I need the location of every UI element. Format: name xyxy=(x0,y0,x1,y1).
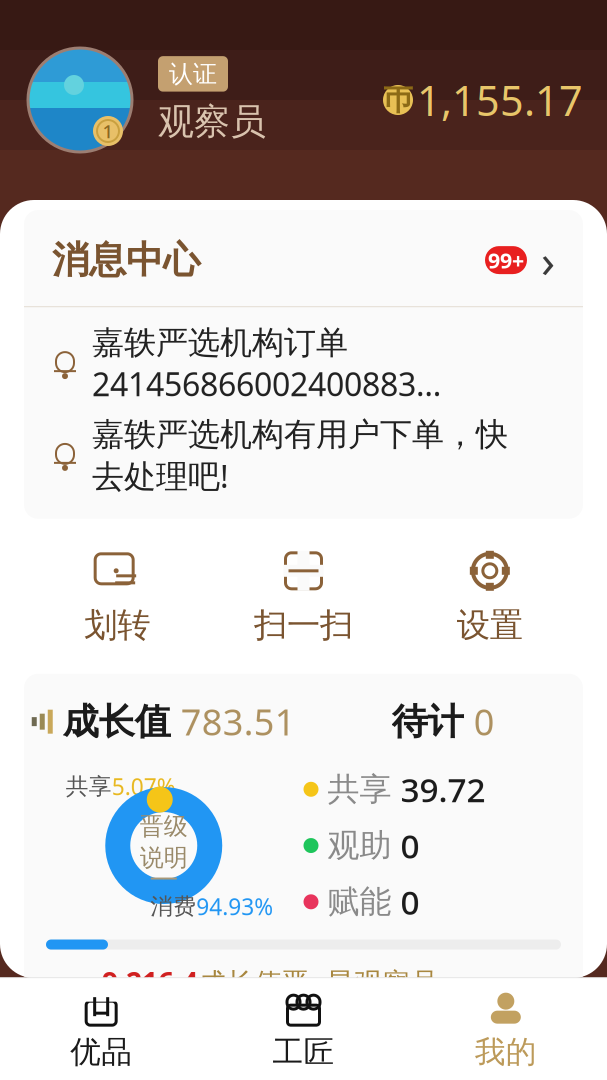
staticText: 划转 xyxy=(84,605,150,646)
button[interactable]: 嘉轶严选机构订单241456866002400883… xyxy=(24,307,583,405)
staticText: 0 xyxy=(400,823,419,868)
button[interactable]: 设置 xyxy=(397,543,583,652)
staticText: 晋级 xyxy=(140,812,188,841)
button[interactable]: 优品 xyxy=(0,990,202,1073)
staticText: 9,216.49 xyxy=(102,963,198,1038)
staticText: 认证 xyxy=(169,59,217,89)
staticText: 嘉轶严选机构订单241456866002400883… xyxy=(92,323,441,405)
staticText: › xyxy=(541,230,555,290)
staticText: 待计 xyxy=(392,699,464,744)
staticText: 5.07% xyxy=(112,771,176,802)
staticText: 成长值晋升为 xyxy=(198,966,310,1035)
staticText: 赋能 xyxy=(327,882,391,921)
staticText: 99+ xyxy=(488,246,524,274)
staticText: 观察员 xyxy=(158,100,266,144)
staticText: 嘉轶严选机构有用户下单，快去处理吧! xyxy=(92,415,508,497)
staticText: 我的 xyxy=(475,1033,537,1071)
staticText: 0 xyxy=(474,698,495,745)
button[interactable]: 消息中心 xyxy=(24,210,583,306)
staticText: 743.79 xyxy=(400,711,504,755)
button[interactable]: 晋级 xyxy=(99,780,229,910)
staticText: 消息中心 xyxy=(52,237,200,283)
button[interactable]: 我的 xyxy=(405,990,607,1073)
staticText: 帀 xyxy=(383,82,412,118)
button[interactable]: 认证 xyxy=(158,56,228,92)
staticText: 设置 xyxy=(457,605,523,646)
staticText: 1,155.17 xyxy=(417,73,583,127)
staticText: 扫一扫 xyxy=(254,605,353,646)
staticText: /月 xyxy=(505,982,543,1019)
staticText: 783.51 xyxy=(181,698,296,745)
staticText: 其他 xyxy=(327,938,391,978)
staticText: 成长值 xyxy=(63,699,171,744)
staticText: 0 xyxy=(400,936,419,980)
staticText: 100 xyxy=(457,982,505,1019)
staticText: 工匠 xyxy=(272,1033,334,1071)
staticText: 消费 xyxy=(150,893,196,920)
button[interactable]: 扫一扫 xyxy=(210,543,397,652)
button[interactable]: 帀 xyxy=(383,73,583,127)
staticText: 星观察员立享 xyxy=(326,966,438,1035)
staticText: 2 xyxy=(310,982,326,1019)
staticText: 观助 xyxy=(327,826,391,865)
staticText: 39.72 xyxy=(400,767,485,811)
staticText: 0 xyxy=(400,880,419,924)
staticText: 再获 xyxy=(46,983,102,1018)
staticText: 说明 xyxy=(140,843,188,872)
button[interactable]: 划转 xyxy=(24,543,210,652)
staticText: 优品 xyxy=(70,1033,132,1071)
button[interactable]: 工匠 xyxy=(202,990,405,1073)
button[interactable]: 嘉轶严选机构有用户下单，快去处理吧! xyxy=(24,405,583,519)
staticText: 共享 xyxy=(327,770,391,809)
staticText: 共享 xyxy=(66,773,112,800)
staticText: 1 xyxy=(102,119,113,143)
staticText: 94.93% xyxy=(196,891,273,922)
